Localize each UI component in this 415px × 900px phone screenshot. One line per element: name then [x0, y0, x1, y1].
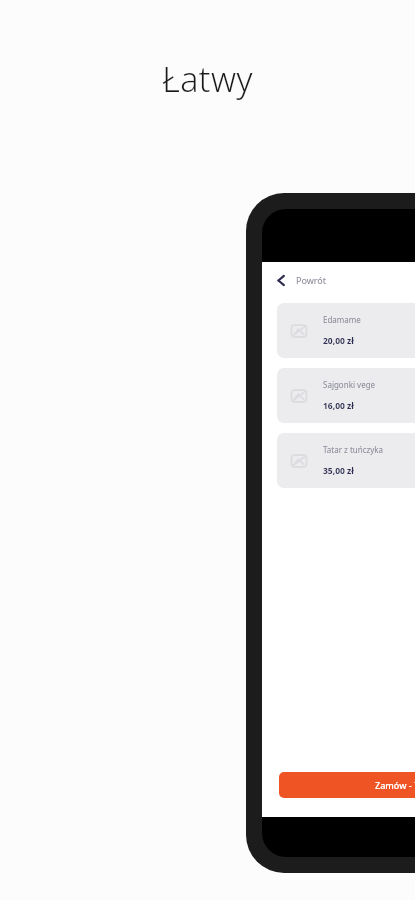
staticText: Sajgonki vege — [323, 379, 376, 390]
staticText: Łatwy — [0, 56, 415, 102]
button[interactable]: Edamame — [277, 303, 415, 358]
button[interactable]: Zamów - 71,00 zł — [279, 772, 415, 798]
button[interactable]: Sajgonki vege — [277, 368, 415, 423]
staticText: Powrót — [296, 274, 327, 286]
staticText: Tatar z tuńczyka — [323, 444, 384, 455]
staticText: 35,00 zł — [323, 465, 354, 477]
staticText: Zamów - 71,00 zł — [375, 779, 415, 791]
staticText: 16,00 zł — [323, 400, 354, 412]
staticText: Edamame — [323, 314, 361, 325]
staticText: 20,00 zł — [323, 335, 354, 347]
other: Powrót — [276, 275, 287, 286]
button[interactable]: Powrót — [262, 262, 415, 298]
button[interactable]: Tatar z tuńczyka — [277, 433, 415, 488]
